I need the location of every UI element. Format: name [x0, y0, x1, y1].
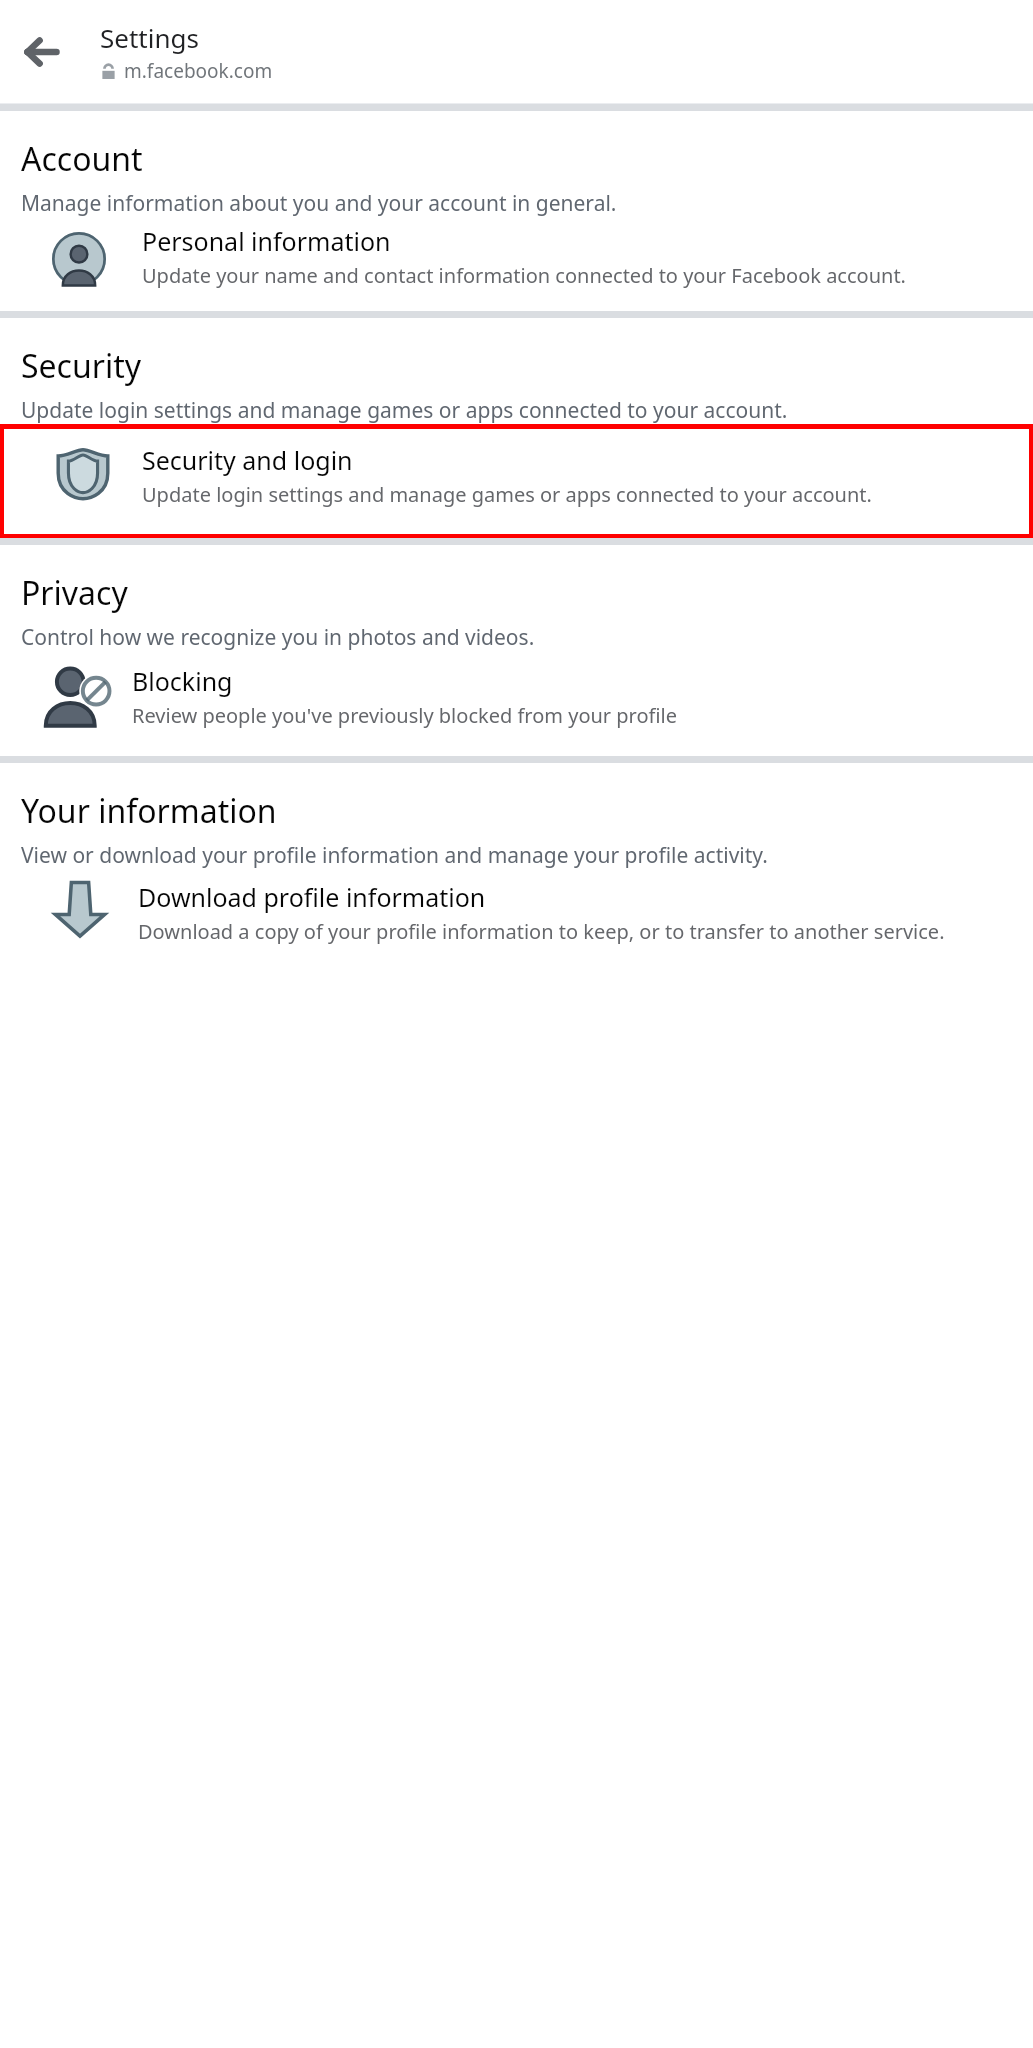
staticText: Review people you've previously blocked … [132, 702, 678, 729]
staticText: Blocking [132, 664, 233, 698]
button[interactable]: Personal information [0, 218, 1033, 311]
staticText: Download a copy of your profile informat… [138, 918, 945, 945]
staticText: View or download your profile informatio… [21, 841, 768, 870]
staticText: Control how we recognize you in photos a… [21, 623, 535, 652]
staticText: Download profile information [138, 880, 486, 914]
staticText: Your information [21, 789, 277, 833]
staticText: m.facebook.com [124, 58, 273, 84]
staticText: Personal information [142, 224, 391, 258]
button[interactable]: Security and login [0, 425, 1033, 538]
staticText: Manage information about you and your ac… [21, 189, 617, 218]
staticText: Security [21, 344, 142, 388]
button[interactable]: Back [14, 24, 70, 80]
button[interactable]: Download profile information [0, 870, 1033, 959]
staticText: Account [21, 137, 143, 181]
button[interactable]: Blocking [0, 652, 1033, 756]
staticText: Privacy [21, 571, 128, 615]
staticText: Update your name and contact information… [142, 262, 906, 289]
staticText: Update login settings and manage games o… [142, 481, 872, 508]
staticText: Settings [100, 20, 199, 55]
staticText: Security and login [142, 443, 353, 477]
staticText: Update login settings and manage games o… [21, 396, 788, 425]
